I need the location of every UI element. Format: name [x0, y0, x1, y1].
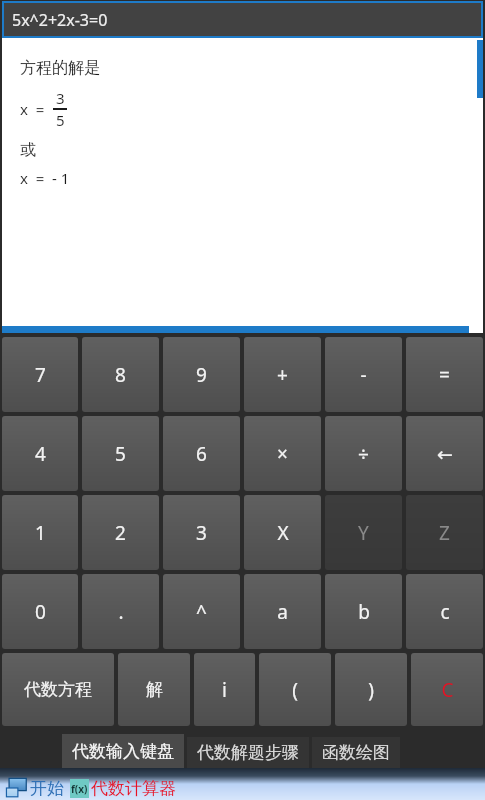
button[interactable]: ÷: [325, 416, 402, 491]
button[interactable]: 开始: [4, 777, 66, 799]
staticText: 代数方程: [24, 679, 92, 700]
button[interactable]: 代数输入键盘: [62, 734, 184, 768]
staticText: c: [440, 599, 450, 625]
button[interactable]: +: [244, 337, 321, 412]
staticText: ): [368, 677, 374, 703]
staticText: 代数计算器: [91, 778, 176, 799]
button[interactable]: (: [259, 653, 331, 726]
staticText: 7: [35, 362, 46, 388]
button[interactable]: i: [194, 653, 255, 726]
staticText: 3: [56, 88, 65, 108]
staticText: 0: [35, 599, 46, 625]
button[interactable]: 2: [82, 495, 159, 570]
staticText: Z: [439, 520, 450, 546]
button[interactable]: C: [411, 653, 483, 726]
button[interactable]: 6: [163, 416, 240, 491]
staticText: .: [118, 599, 124, 625]
button[interactable]: -: [325, 337, 402, 412]
button[interactable]: a: [244, 574, 321, 649]
button[interactable]: 5: [82, 416, 159, 491]
button[interactable]: 9: [163, 337, 240, 412]
staticText: 4: [35, 441, 46, 467]
button[interactable]: 1: [2, 495, 78, 570]
button[interactable]: X: [244, 495, 321, 570]
staticText: x = - 1: [20, 168, 70, 188]
staticText: Y: [358, 520, 369, 546]
button[interactable]: ^: [163, 574, 240, 649]
staticText: +: [277, 362, 288, 388]
button[interactable]: b: [325, 574, 402, 649]
button[interactable]: 解: [118, 653, 190, 726]
staticText: ×: [277, 441, 288, 467]
button[interactable]: Z: [406, 495, 483, 570]
button[interactable]: f(x): [70, 778, 176, 799]
staticText: f(x): [71, 782, 88, 796]
staticText: 开始: [30, 778, 64, 799]
staticText: 3: [196, 520, 207, 546]
staticText: 1: [35, 520, 46, 546]
staticText: 5x^2+2x-3=0: [12, 9, 108, 31]
button[interactable]: c: [406, 574, 483, 649]
staticText: 6: [196, 441, 207, 467]
staticText: ^: [196, 599, 207, 625]
staticText: 9: [196, 362, 207, 388]
button[interactable]: 8: [82, 337, 159, 412]
staticText: b: [358, 599, 370, 625]
staticText: ←: [437, 443, 453, 465]
staticText: 2: [115, 520, 126, 546]
staticText: 5: [56, 110, 65, 130]
staticText: C: [441, 677, 454, 703]
staticText: a: [277, 599, 288, 625]
button[interactable]: 函数绘图: [312, 737, 400, 768]
staticText: =: [439, 362, 450, 388]
button[interactable]: 7: [2, 337, 78, 412]
staticText: 或: [20, 140, 36, 160]
staticText: 8: [115, 362, 126, 388]
button[interactable]: 5x^2+2x-3=0: [4, 3, 481, 36]
button[interactable]: ): [335, 653, 407, 726]
staticText: 代数输入键盘: [72, 741, 174, 762]
staticText: 5: [115, 441, 126, 467]
button[interactable]: 3: [163, 495, 240, 570]
staticText: 解: [146, 679, 163, 700]
button[interactable]: Y: [325, 495, 402, 570]
staticText: i: [222, 677, 227, 703]
staticText: x =: [20, 99, 53, 119]
button[interactable]: 代数方程: [2, 653, 114, 726]
staticText: ÷: [358, 441, 369, 467]
staticText: 函数绘图: [322, 742, 390, 763]
button[interactable]: ←: [406, 416, 483, 491]
button[interactable]: .: [82, 574, 159, 649]
staticText: 方程的解是: [20, 58, 100, 78]
staticText: X: [277, 520, 289, 546]
staticText: (: [292, 677, 298, 703]
button[interactable]: ×: [244, 416, 321, 491]
button[interactable]: 0: [2, 574, 78, 649]
button[interactable]: 4: [2, 416, 78, 491]
staticText: -: [360, 362, 367, 388]
staticText: 代数解题步骤: [197, 742, 299, 763]
button[interactable]: =: [406, 337, 483, 412]
button[interactable]: 代数解题步骤: [187, 737, 309, 768]
